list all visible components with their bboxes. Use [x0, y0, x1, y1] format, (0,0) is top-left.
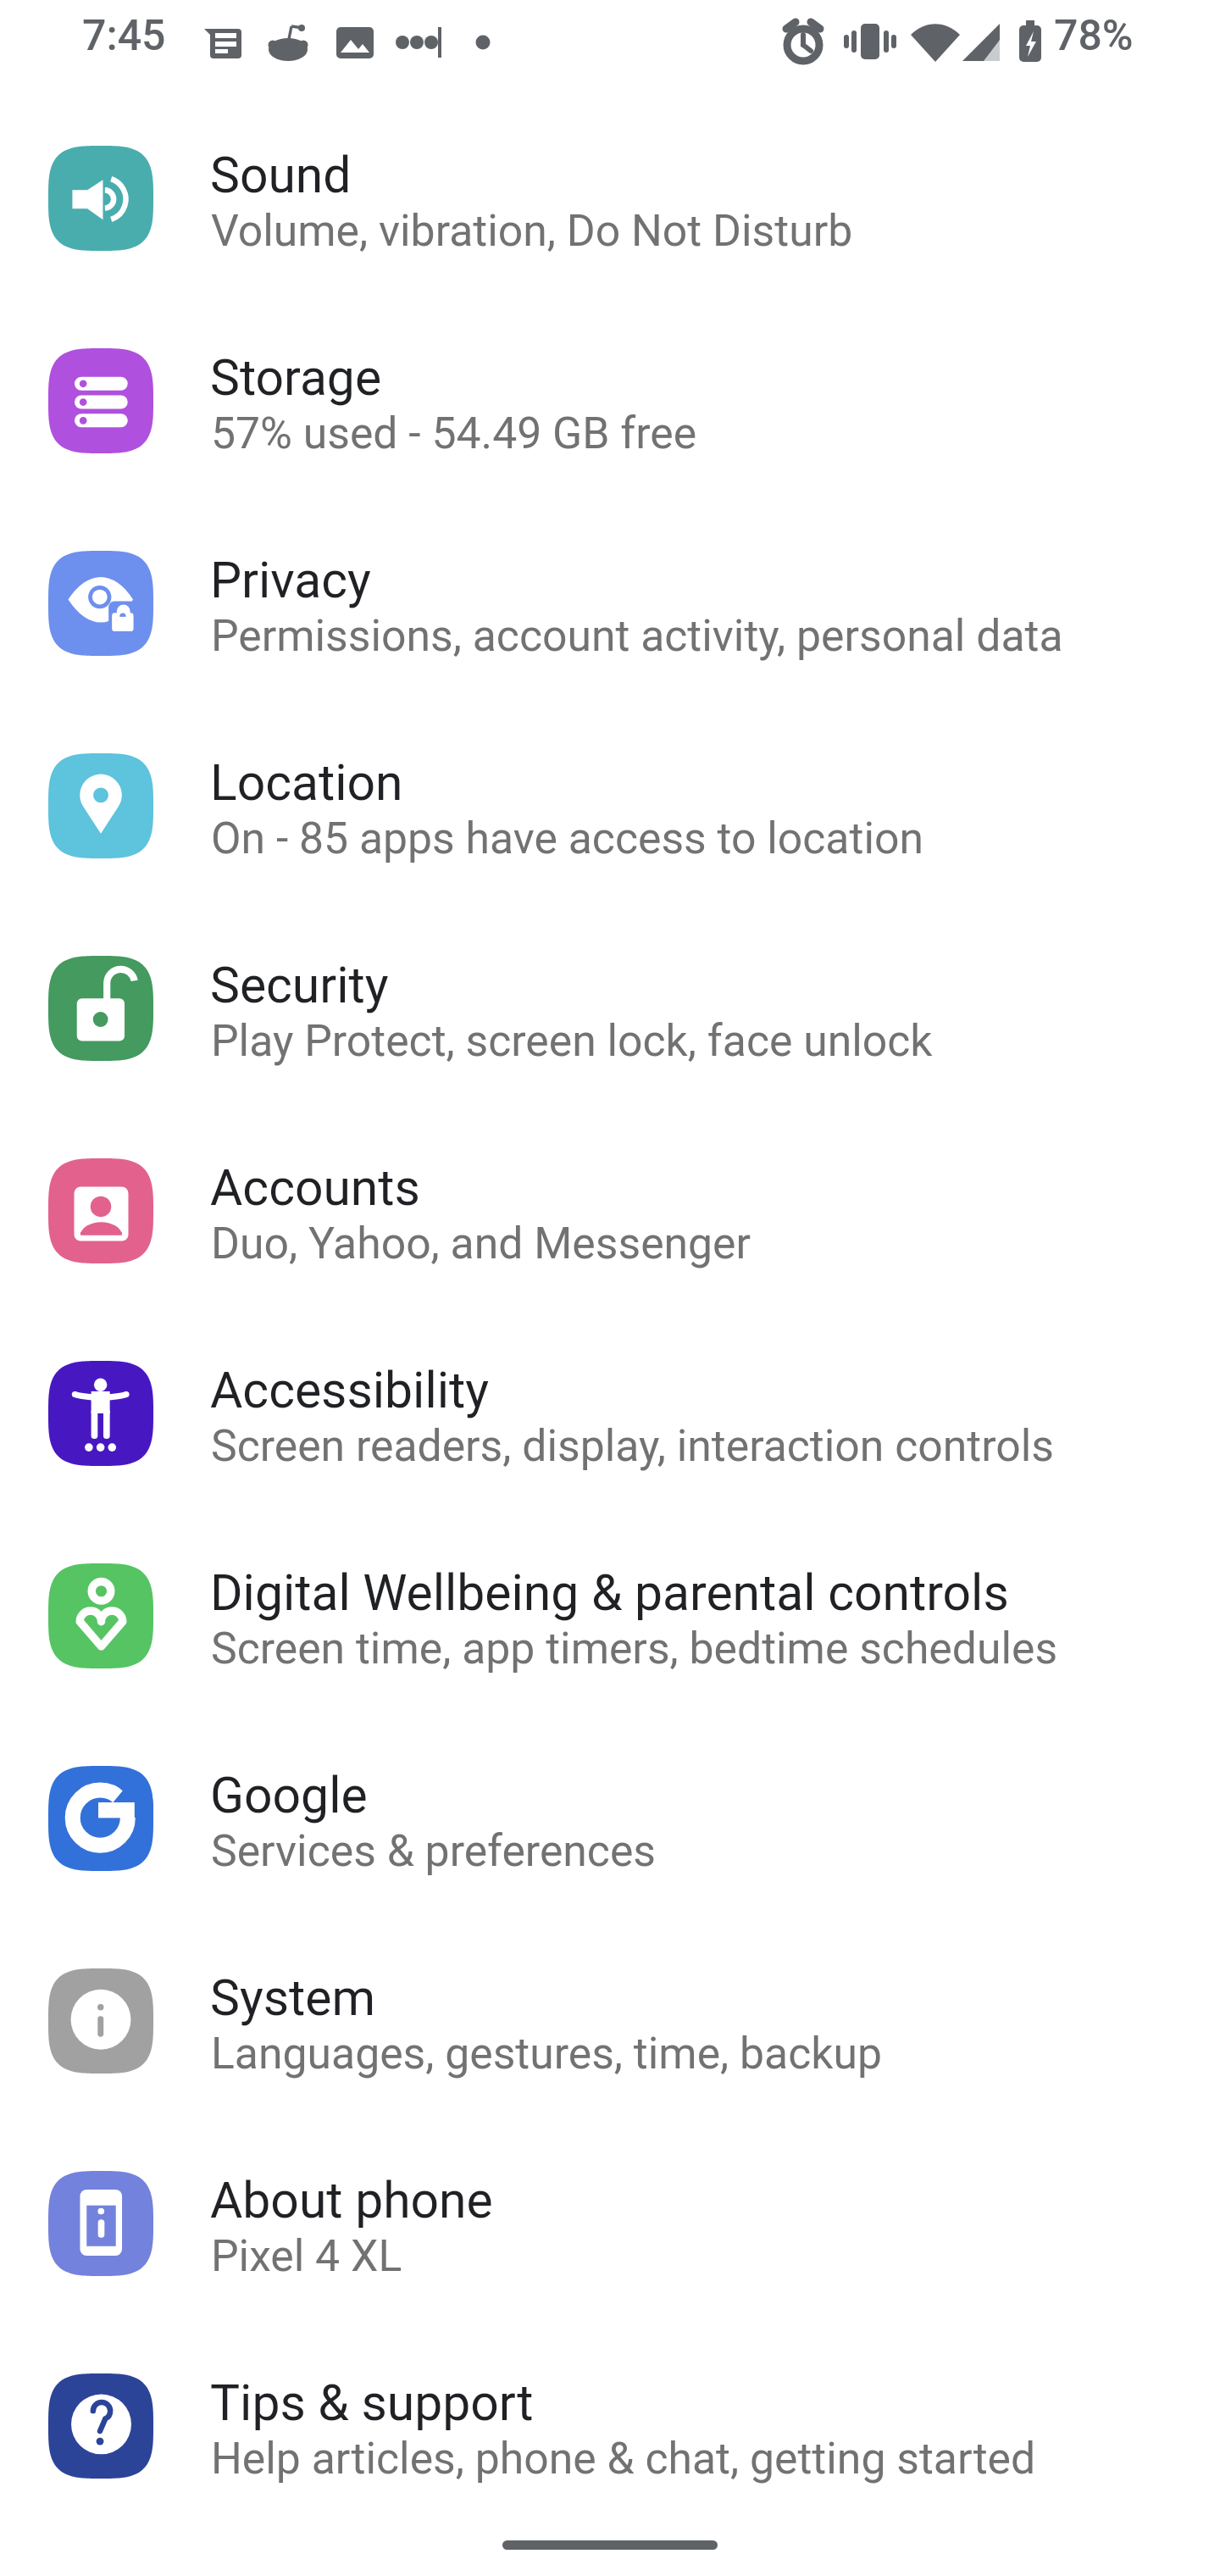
staticText: System: [210, 1968, 376, 2027]
staticText: Tips & support: [210, 2373, 534, 2432]
button[interactable]: Digital Wellbeing & parental controls: [0, 1563, 1220, 1766]
staticText: 57% used - 54.49 GB free: [211, 408, 697, 459]
staticText: Screen readers, display, interaction con…: [211, 1420, 1054, 1472]
button[interactable]: Accounts: [0, 1158, 1220, 1361]
staticText: Google: [210, 1766, 368, 1824]
staticText: Volume, vibration, Do Not Disturb: [211, 205, 853, 257]
staticText: Services & preferences: [211, 1825, 656, 1877]
staticText: Accounts: [210, 1158, 420, 1217]
button[interactable]: Accessibility: [0, 1361, 1220, 1563]
staticText: Privacy: [210, 551, 371, 609]
button[interactable]: Location: [0, 753, 1220, 956]
staticText: 7:45: [82, 11, 166, 61]
staticText: Accessibility: [210, 1361, 490, 1419]
staticText: Security: [210, 956, 389, 1014]
staticText: 78%: [1054, 11, 1134, 61]
button[interactable]: System: [0, 1968, 1220, 2171]
staticText: On - 85 apps have access to location: [211, 813, 923, 864]
staticText: Help articles, phone & chat, getting sta…: [211, 2433, 1036, 2484]
staticText: Digital Wellbeing & parental controls: [210, 1563, 1009, 1622]
staticText: Pixel 4 XL: [211, 2230, 402, 2282]
button[interactable]: Storage: [0, 348, 1220, 551]
button[interactable]: Google: [0, 1766, 1220, 1968]
staticText: Languages, gestures, time, backup: [211, 2028, 882, 2079]
button[interactable]: Privacy: [0, 551, 1220, 753]
staticText: Duo, Yahoo, and Messenger: [211, 1218, 751, 1269]
staticText: Storage: [210, 348, 382, 407]
button[interactable]: About phone: [0, 2171, 1220, 2373]
staticText: Sound: [210, 146, 352, 204]
other: Home gesture handle: [502, 2540, 718, 2550]
staticText: Permissions, account activity, personal …: [211, 610, 1063, 662]
staticText: Play Protect, screen lock, face unlock: [211, 1015, 933, 1067]
button[interactable]: Security: [0, 956, 1220, 1158]
staticText: Screen time, app timers, bedtime schedul…: [211, 1623, 1058, 1674]
button[interactable]: Tips & support: [0, 2373, 1220, 2576]
button[interactable]: Sound: [0, 146, 1220, 348]
staticText: Location: [210, 753, 403, 812]
staticText: About phone: [210, 2171, 493, 2229]
